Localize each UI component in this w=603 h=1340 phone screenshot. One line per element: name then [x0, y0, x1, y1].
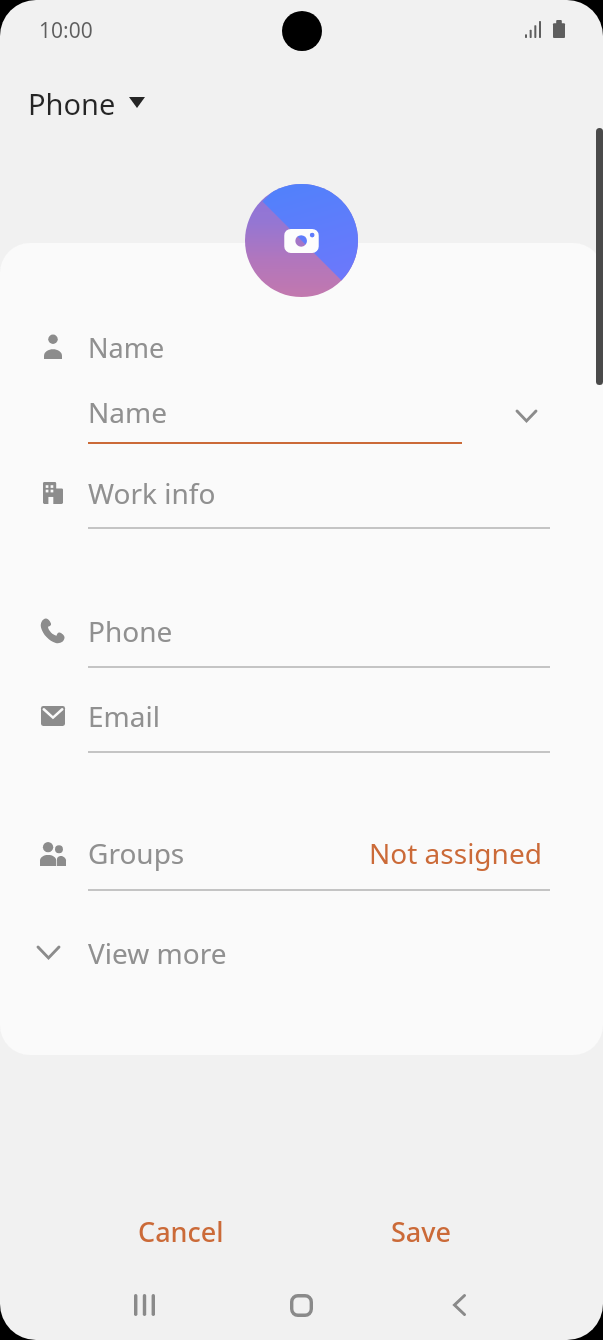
staticText: Work info	[88, 474, 216, 512]
staticText: Name	[88, 393, 167, 431]
staticText: Name	[88, 329, 165, 366]
button[interactable]: Cancel	[60, 1202, 302, 1260]
staticText: Phone	[28, 84, 116, 123]
button[interactable]: Home	[261, 1282, 341, 1328]
button[interactable]: Back	[419, 1282, 499, 1328]
button[interactable]: Add photo	[245, 184, 358, 297]
staticText: Groups	[88, 834, 185, 872]
button[interactable]	[16, 76, 164, 132]
button[interactable]: Save	[302, 1202, 540, 1260]
staticText: Cancel	[138, 1213, 224, 1250]
staticText: Not assigned	[369, 834, 542, 872]
staticText: 10:00	[39, 16, 93, 45]
staticText: Save	[391, 1213, 452, 1250]
staticText: View more	[88, 934, 227, 972]
button[interactable]: Recent apps	[104, 1282, 184, 1328]
staticText: Phone	[88, 612, 173, 650]
staticText: Email	[88, 697, 160, 735]
button[interactable]	[0, 911, 603, 993]
